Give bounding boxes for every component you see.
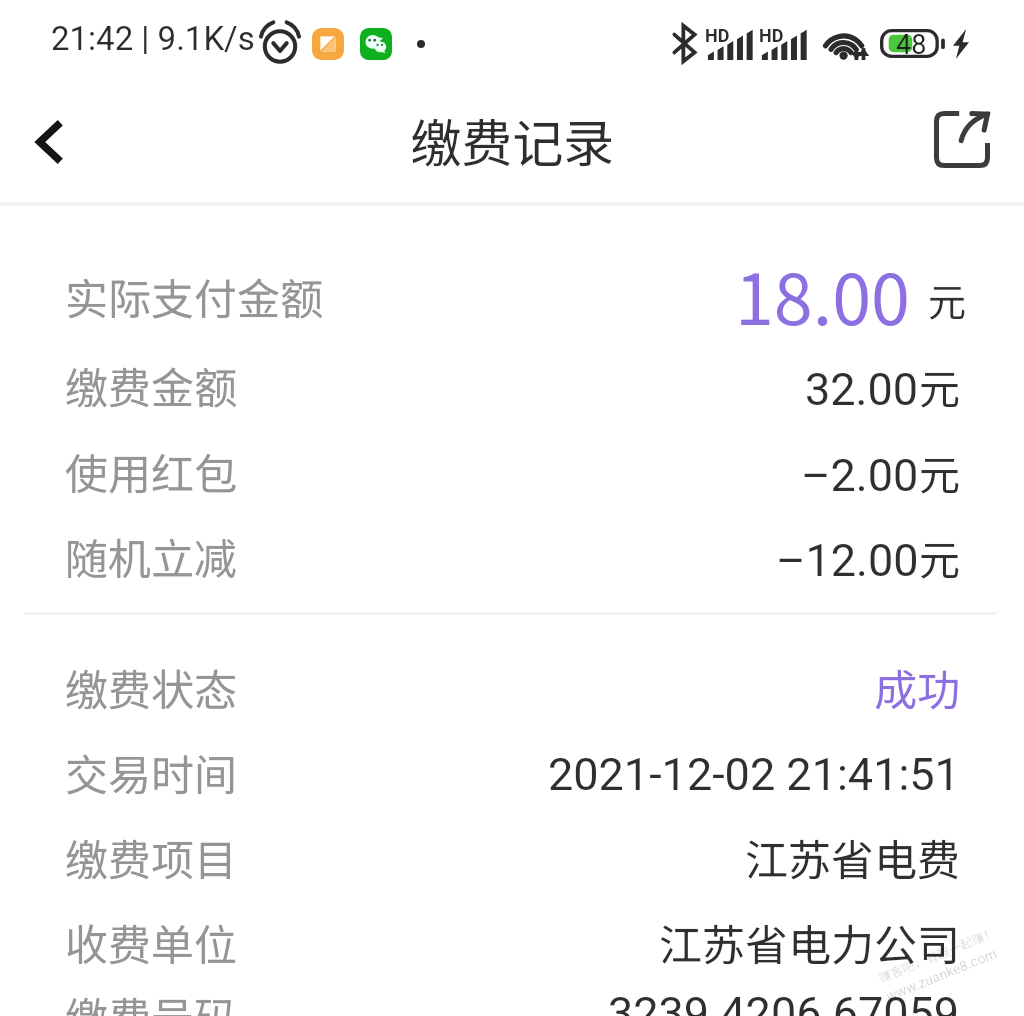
staticText: www.zuanke8.com [884, 945, 999, 1004]
staticText: 交易时间 [65, 741, 237, 803]
staticText: 2021-12-02 21:41:51 [548, 748, 960, 801]
staticText: 元 [919, 527, 960, 586]
staticText: 实际支付金额 [65, 265, 323, 327]
button[interactable]: 收费单位 [0, 899, 1024, 984]
staticText: 21:42 | 9.1K/s [51, 19, 255, 58]
staticText: 使用红包 [65, 440, 237, 502]
staticText: 元 [919, 442, 960, 501]
staticText: HD [705, 25, 730, 46]
staticText: 收费单位 [65, 911, 237, 973]
staticText: 江苏省电力公司 [659, 911, 960, 973]
button[interactable]: 缴费状态 [0, 644, 1024, 729]
staticText: 江苏省电费 [745, 826, 960, 888]
button[interactable]: 随机立减 [0, 514, 1024, 598]
staticText: –2.00 [801, 449, 919, 502]
staticText: 缴费号码 [65, 984, 237, 1016]
button[interactable]: 使用红包 [0, 428, 1024, 514]
staticText: HD [759, 25, 784, 46]
staticText: 32.00 [805, 363, 919, 416]
staticText: 赚客吧，有趣一起赚！ [875, 922, 999, 986]
button[interactable]: 缴费金额 [0, 342, 1024, 428]
button[interactable]: 缴费号码 [0, 984, 1024, 1016]
staticText: 缴费项目 [65, 826, 237, 888]
staticText: 18.00 [735, 244, 910, 336]
staticText: 元 [919, 356, 960, 415]
button[interactable]: 缴费项目 [0, 814, 1024, 899]
button[interactable]: 交易时间 [0, 729, 1024, 814]
staticText: 成功 [874, 656, 960, 718]
staticText: 缴费状态 [65, 656, 237, 718]
staticText: 缴费金额 [65, 354, 237, 416]
staticText: 3239 4206 67059 [608, 987, 960, 1016]
staticText: 48 [896, 29, 927, 58]
staticText: 随机立减 [65, 525, 237, 587]
staticText: –12.00 [776, 534, 919, 587]
staticText: 缴费记录 [410, 103, 615, 177]
button[interactable]: Back [4, 94, 96, 194]
button[interactable]: Share [925, 94, 999, 194]
staticText: 元 [928, 272, 967, 327]
